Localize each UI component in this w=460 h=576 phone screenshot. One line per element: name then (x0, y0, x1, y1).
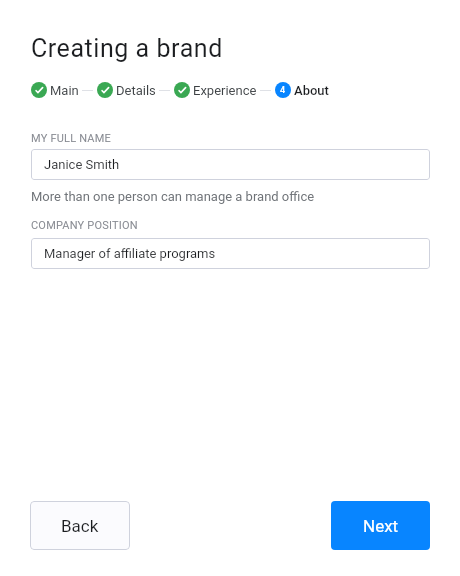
staticText: 4 (280, 85, 286, 96)
staticText: Details (116, 83, 156, 98)
button[interactable]: Next (331, 501, 430, 550)
staticText: COMPANY POSITION (31, 219, 138, 232)
staticText: Main (50, 83, 79, 98)
button[interactable]: Experience (174, 82, 257, 98)
staticText: Creating a brand (31, 34, 223, 63)
button[interactable]: Janice Smith (31, 149, 430, 180)
button[interactable]: Manager of affiliate programs (31, 238, 430, 269)
button[interactable]: Back (30, 501, 130, 550)
staticText: Janice Smith (44, 157, 120, 172)
staticText: Manager of affiliate programs (44, 246, 216, 261)
staticText: Experience (193, 83, 257, 98)
button[interactable]: Details (97, 82, 156, 98)
staticText: Back (61, 516, 99, 536)
staticText: More than one person can manage a brand … (31, 189, 315, 204)
staticText: MY FULL NAME (31, 132, 111, 145)
staticText: Next (363, 516, 399, 536)
button[interactable]: Main (31, 82, 79, 98)
staticText: About (294, 83, 329, 98)
button[interactable]: 4 (275, 82, 329, 98)
